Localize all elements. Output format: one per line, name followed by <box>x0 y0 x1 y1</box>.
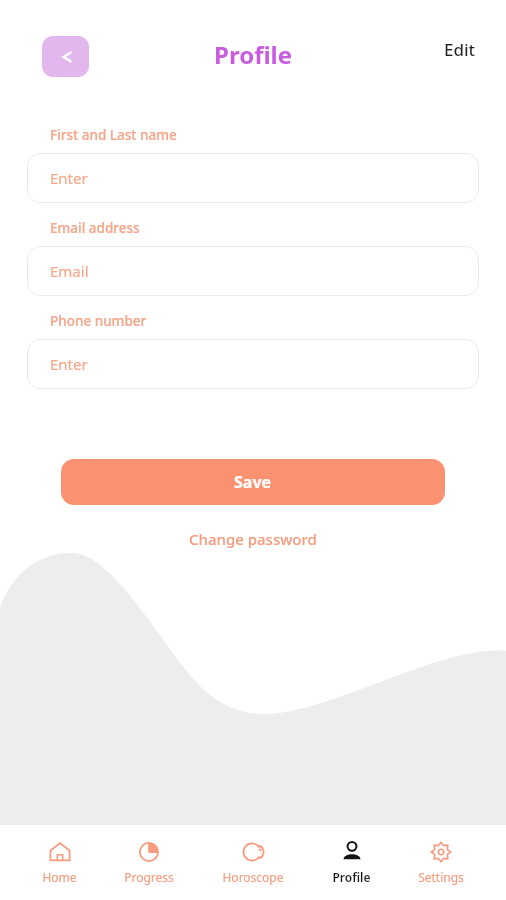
button[interactable]: Email <box>27 246 479 296</box>
staticText: Email address <box>50 219 140 237</box>
button[interactable]: Enter <box>27 153 479 203</box>
button[interactable]: Horoscope <box>216 838 290 887</box>
staticText: Edit <box>444 38 476 61</box>
staticText: Settings <box>418 869 464 885</box>
staticText: Change password <box>189 529 317 549</box>
button[interactable]: Settings <box>412 838 470 887</box>
button[interactable]: Enter <box>27 339 479 389</box>
staticText: Profile <box>214 38 293 71</box>
staticText: Email <box>50 261 89 281</box>
staticText: Save <box>234 471 272 493</box>
staticText: Horoscope <box>222 869 284 885</box>
button[interactable]: Back <box>42 36 89 77</box>
staticText: Profile <box>332 869 371 885</box>
staticText: Home <box>42 869 77 885</box>
staticText: Progress <box>124 869 174 885</box>
staticText: Enter <box>50 354 88 374</box>
button[interactable]: Progress <box>118 838 180 887</box>
staticText: First and Last name <box>50 126 177 144</box>
staticText: Phone number <box>50 312 147 330</box>
staticText: Enter <box>50 168 88 188</box>
button[interactable]: Profile <box>326 838 377 887</box>
button[interactable]: Home <box>36 838 83 887</box>
button[interactable]: Change password <box>179 525 327 553</box>
button[interactable]: Edit <box>436 34 484 65</box>
button[interactable]: Save <box>61 459 445 505</box>
